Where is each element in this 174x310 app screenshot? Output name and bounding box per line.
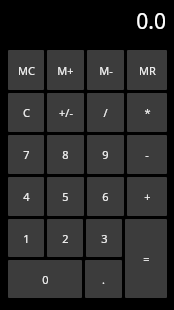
staticText: M- xyxy=(99,63,113,78)
staticText: - xyxy=(145,147,149,162)
button[interactable]: M+ xyxy=(47,50,84,90)
staticText: 1 xyxy=(23,231,30,246)
button[interactable]: 7 xyxy=(8,135,44,174)
button[interactable]: +/- xyxy=(47,93,84,132)
staticText: 6 xyxy=(102,189,109,204)
staticText: C xyxy=(23,105,30,120)
staticText: . xyxy=(102,272,105,287)
button[interactable]: 9 xyxy=(87,135,124,174)
staticText: / xyxy=(103,105,108,120)
staticText: = xyxy=(143,251,150,266)
button[interactable]: MR xyxy=(127,50,167,90)
staticText: * xyxy=(144,105,151,120)
staticText: 9 xyxy=(102,147,109,162)
staticText: M+ xyxy=(57,63,74,78)
staticText: MC xyxy=(18,63,35,78)
staticText: 4 xyxy=(23,189,30,204)
button[interactable]: 8 xyxy=(47,135,84,174)
staticText: 5 xyxy=(62,189,69,204)
button[interactable]: 2 xyxy=(47,219,83,257)
button[interactable]: MC xyxy=(8,50,44,90)
staticText: 0.0 xyxy=(136,7,166,36)
staticText: 2 xyxy=(62,231,69,246)
button[interactable]: 1 xyxy=(8,219,44,257)
staticText: MR xyxy=(139,63,156,78)
staticText: + xyxy=(144,189,151,204)
staticText: +/- xyxy=(59,105,73,120)
button[interactable]: = xyxy=(125,219,167,298)
button[interactable]: / xyxy=(87,93,124,132)
button[interactable]: 4 xyxy=(8,177,44,216)
button[interactable]: 5 xyxy=(47,177,84,216)
button[interactable]: * xyxy=(127,93,167,132)
button[interactable]: + xyxy=(127,177,167,216)
staticText: 8 xyxy=(62,147,69,162)
button[interactable]: M- xyxy=(87,50,124,90)
button[interactable]: - xyxy=(127,135,167,174)
staticText: 0 xyxy=(42,272,49,287)
button[interactable]: 3 xyxy=(86,219,122,257)
staticText: 3 xyxy=(101,231,108,246)
button[interactable]: . xyxy=(85,260,122,298)
staticText: 7 xyxy=(23,147,30,162)
button[interactable]: 0 xyxy=(8,260,82,298)
button[interactable]: C xyxy=(8,93,44,132)
button[interactable]: 6 xyxy=(87,177,124,216)
